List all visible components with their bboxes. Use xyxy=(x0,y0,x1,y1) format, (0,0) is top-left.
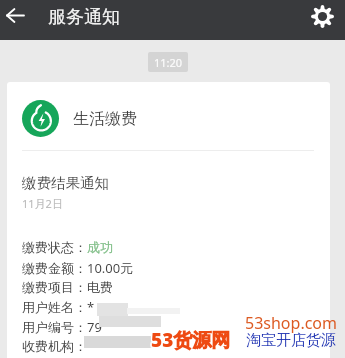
button[interactable]: Back xyxy=(0,0,30,30)
staticText: 11:20 xyxy=(154,55,183,70)
staticText: 收费机构： xyxy=(22,338,87,354)
staticText: 用户姓名：* xyxy=(22,298,95,316)
staticText: 缴费金额：10.00元 xyxy=(22,259,134,277)
staticText: 53货源网 xyxy=(151,327,231,353)
staticText: 53货源网 xyxy=(151,328,231,354)
staticText: 53货源网 xyxy=(150,326,230,352)
staticText: 53货源网 xyxy=(150,328,230,354)
staticText: 缴费状态：成功 xyxy=(22,239,113,255)
staticText: 53货源网 xyxy=(152,326,232,352)
staticText: 用户编号：79 xyxy=(22,318,102,336)
staticText: 53货源网 xyxy=(150,327,230,353)
staticText: 53货源网 xyxy=(152,327,232,353)
staticText: 53货源网 xyxy=(151,326,231,352)
staticText: 53货源网 xyxy=(152,328,232,354)
staticText: 生活缴费 xyxy=(73,109,137,129)
staticText: 缴费项目：电费 xyxy=(22,279,113,295)
staticText: 淘宝开店货源 xyxy=(246,331,336,350)
staticText: 11月2日 xyxy=(22,196,63,211)
button[interactable]: Settings xyxy=(306,0,338,32)
staticText: 53shop.com xyxy=(245,312,337,334)
staticText: 服务通知 xyxy=(48,6,120,29)
button[interactable]: 生活缴费 xyxy=(7,82,330,358)
staticText: 缴费结果通知 xyxy=(22,174,109,192)
